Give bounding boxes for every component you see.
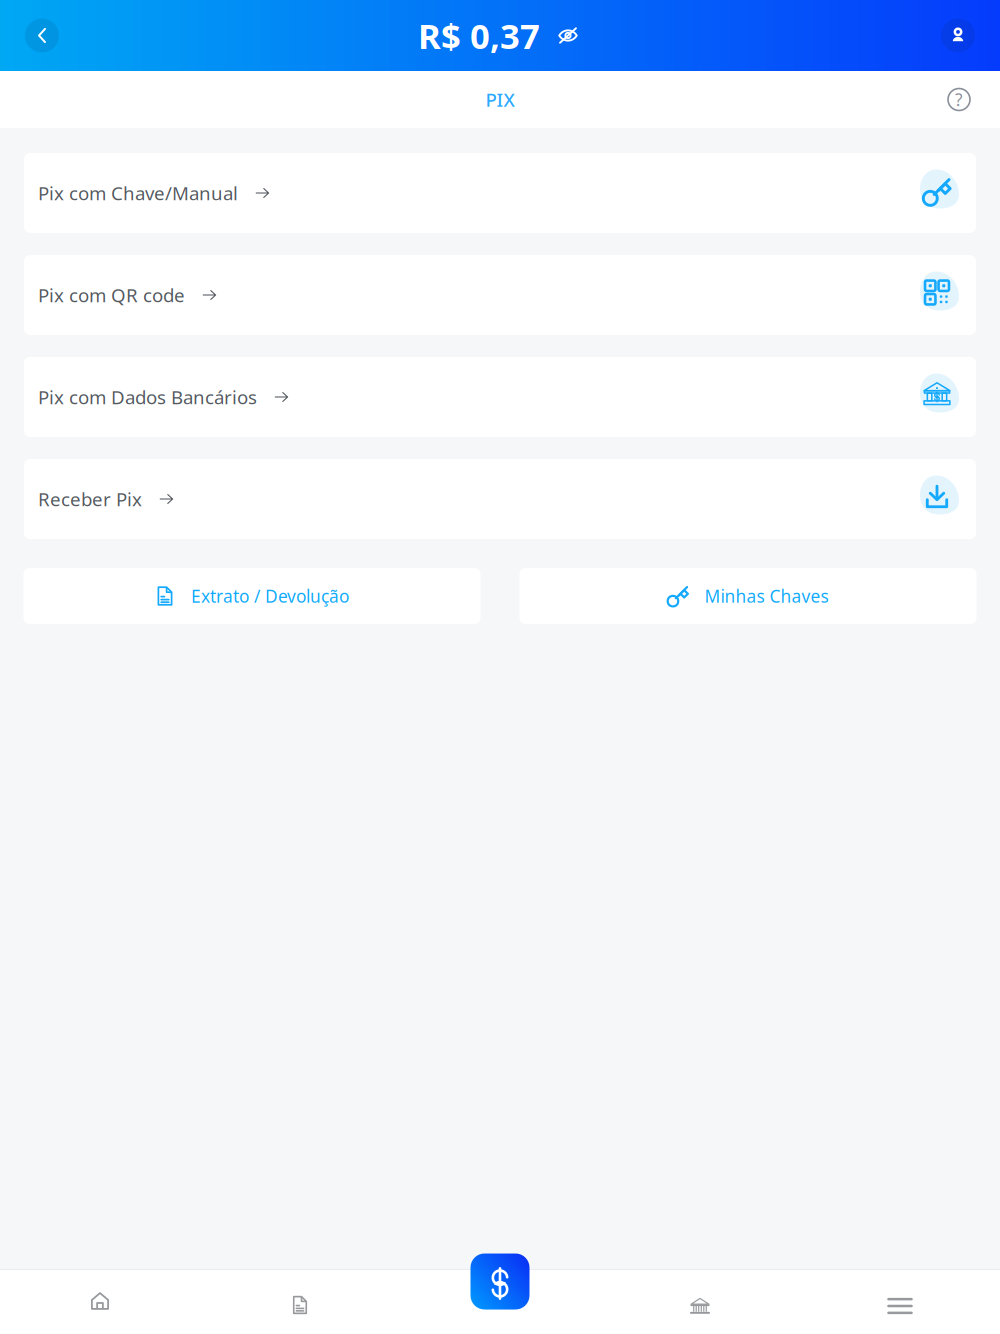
button[interactable]: Profile: [932, 9, 984, 61]
staticText: Minhas Chaves: [704, 584, 828, 607]
staticText: Pix com Dados Bancários: [38, 385, 257, 409]
staticText: ?: [955, 88, 963, 111]
staticText: Pix com QR code: [38, 283, 185, 307]
button[interactable]: Hide balance: [554, 21, 582, 49]
button[interactable]: Extrato / Devolução: [23, 568, 480, 624]
staticText: PIX: [485, 87, 514, 112]
button[interactable]: Help: [935, 75, 983, 123]
button[interactable]: Pix com Dados Bancários: [24, 357, 976, 437]
button[interactable]: Início: [0, 1270, 200, 1334]
button[interactable]: Extrato: [200, 1270, 400, 1334]
button[interactable]: Bancos: [600, 1270, 800, 1334]
staticText: Pix com Chave/Manual: [38, 181, 238, 205]
button[interactable]: Pix com QR code: [24, 255, 976, 335]
staticText: Extrato / Devolução: [191, 584, 349, 607]
button[interactable]: Menu: [800, 1270, 1000, 1334]
staticText: R$ 0,37: [418, 12, 540, 58]
button[interactable]: Pix com Chave/Manual: [24, 153, 976, 233]
button[interactable]: Pagar: [460, 1241, 540, 1321]
staticText: Receber Pix: [38, 487, 142, 511]
button[interactable]: Back: [16, 9, 68, 61]
button[interactable]: Receber Pix: [24, 459, 976, 539]
button[interactable]: Minhas Chaves: [519, 568, 976, 624]
